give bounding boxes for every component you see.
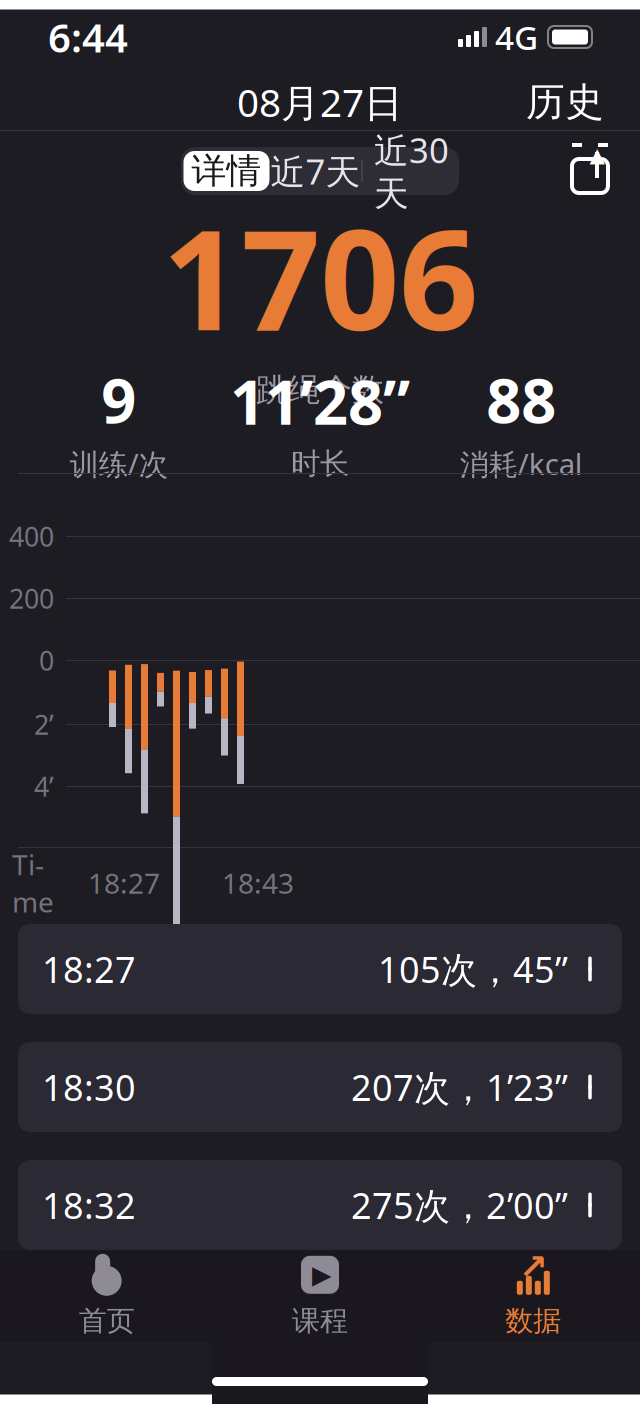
staticText: 近30天 (374, 127, 449, 215)
staticText: 6:44 (48, 10, 128, 63)
staticText: 数据 (505, 1304, 561, 1338)
staticText: 88 (486, 359, 556, 440)
button[interactable]: 详情 (183, 151, 269, 191)
button[interactable]: 分享 (562, 143, 618, 199)
staticText: 0 (39, 643, 54, 678)
button[interactable]: 18:27 (18, 924, 622, 1014)
staticText: Time (12, 846, 54, 920)
button[interactable]: ↗ (427, 1248, 640, 1344)
staticText: 2’ (34, 707, 54, 742)
staticText: 4’ (34, 769, 54, 804)
staticText: 9 (101, 359, 136, 440)
staticText: 400 (9, 519, 54, 554)
staticText: 历史 (526, 78, 604, 126)
button[interactable]: 历史 (504, 64, 626, 140)
staticText: 18:32 (42, 1181, 136, 1229)
staticText: 18:30 (42, 1063, 136, 1111)
button[interactable]: 18:32 (18, 1160, 622, 1250)
staticText: 18:43 (222, 864, 294, 902)
staticText: 训练/次 (70, 444, 168, 483)
button[interactable]: 首页 (0, 1248, 213, 1344)
staticText: ↗ (519, 1247, 548, 1286)
staticText: 跳绳个数 (256, 370, 384, 410)
staticText: 首页 (79, 1304, 135, 1338)
staticText: ▲ (589, 144, 604, 166)
staticText: 1706 (162, 184, 478, 368)
staticText: 08月27日 (237, 76, 403, 128)
staticText: 207次，1’23” (351, 1063, 568, 1111)
staticText: 课程 (292, 1304, 348, 1338)
staticText: 时长 (291, 446, 349, 482)
button[interactable]: ▶ (213, 1248, 427, 1344)
staticText: 详情 (191, 150, 261, 192)
staticText: 18:27 (88, 864, 160, 902)
button[interactable]: 18:30 (18, 1042, 622, 1132)
staticText: 275次，2’00” (351, 1181, 568, 1229)
button[interactable]: 近30天 (362, 151, 460, 191)
staticText: 200 (9, 581, 54, 616)
staticText: 4G (495, 15, 538, 59)
staticText: 18:27 (42, 945, 136, 993)
staticText: 105次，45” (378, 945, 568, 993)
staticText: 消耗/kcal (460, 444, 583, 483)
staticText: 近7天 (270, 148, 360, 194)
staticText: 11’28” (230, 360, 410, 442)
button[interactable]: 近7天 (269, 151, 361, 191)
staticText: ▶ (312, 1260, 331, 1289)
